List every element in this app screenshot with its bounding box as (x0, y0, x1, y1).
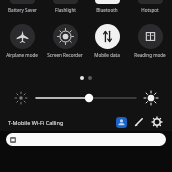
button[interactable]: Raise brightness (142, 89, 160, 107)
staticText: T-Mobile Wi-Fi Calling (8, 119, 64, 126)
button[interactable]: Flashlight (45, 0, 85, 13)
button[interactable]: Edit (130, 113, 148, 131)
staticText: Mobile data (94, 52, 120, 58)
staticText: Reading mode (134, 52, 166, 58)
button[interactable]: Lower brightness (12, 89, 30, 107)
staticText: Hotspot (141, 7, 159, 13)
staticText: Airplane mode (6, 52, 38, 58)
button[interactable]: Settings (148, 113, 166, 131)
staticText: Bluetooth (96, 7, 118, 13)
button[interactable]: T-Mobile Wi-Fi Calling (8, 119, 112, 126)
staticText: Flashlight (55, 7, 76, 13)
button[interactable]: Bluetooth (87, 0, 127, 13)
button[interactable]: Airplane mode (2, 24, 42, 58)
button[interactable] (6, 133, 166, 146)
button[interactable]: Account (112, 113, 130, 131)
button[interactable]: Hotspot (130, 0, 170, 13)
button[interactable]: Screen Recorder (45, 24, 85, 58)
button[interactable]: Brightness (36, 89, 136, 107)
button[interactable]: Reading mode (130, 24, 170, 58)
button[interactable]: Mobile data (87, 24, 127, 58)
staticText: Battery Saver (8, 7, 37, 13)
button[interactable]: Battery Saver (2, 0, 42, 13)
staticText: Screen Recorder (47, 52, 83, 58)
